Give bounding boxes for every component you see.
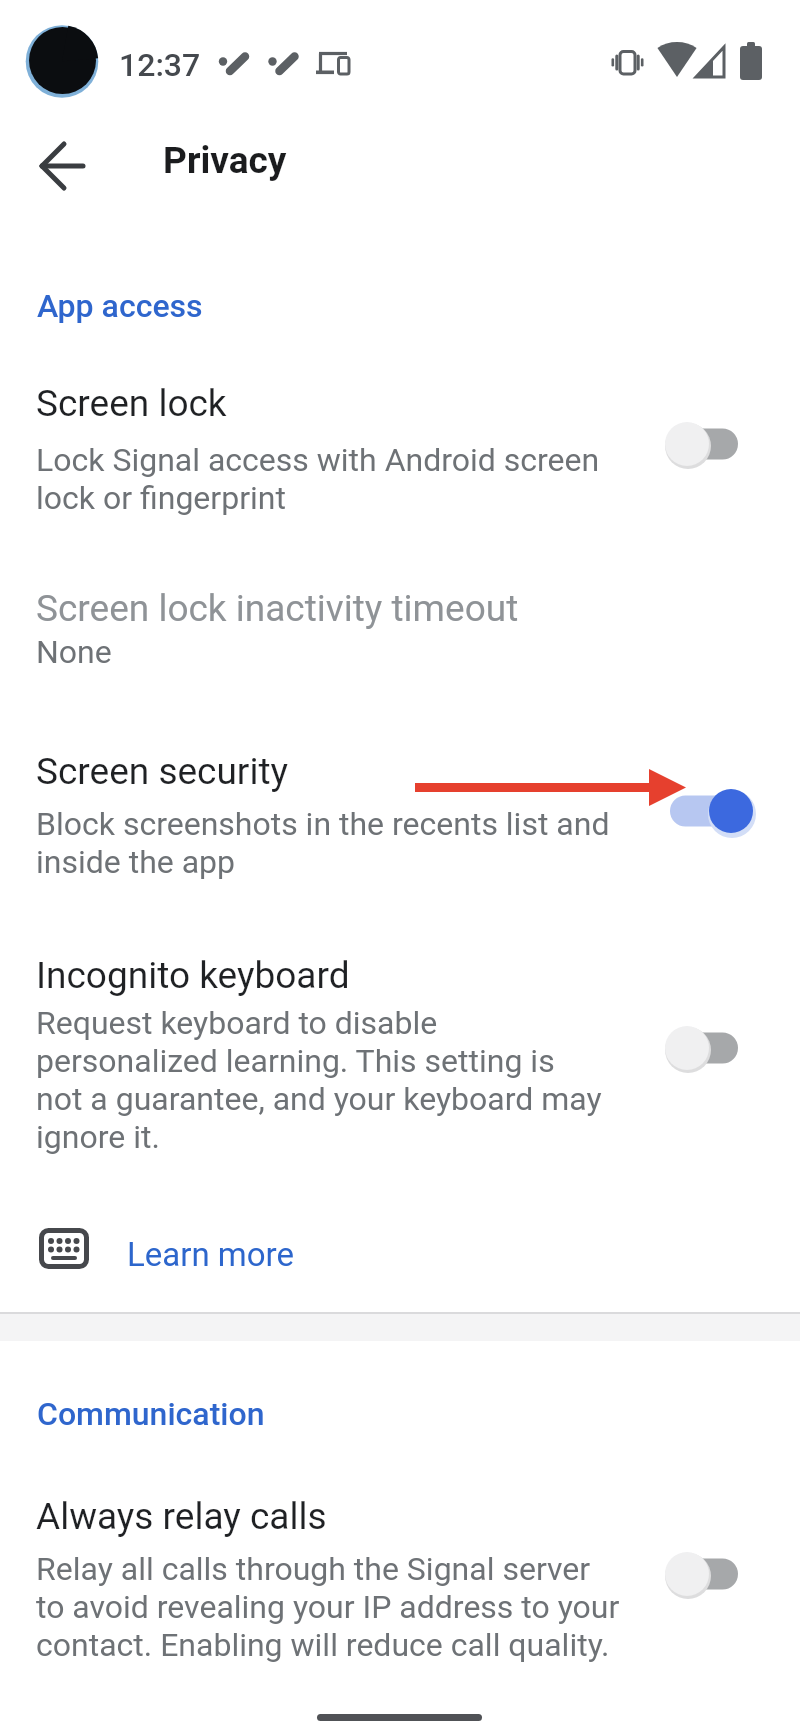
staticText: Privacy [163, 139, 287, 182]
staticText: Learn more [127, 1235, 294, 1274]
staticText: Screen lock inactivity timeout [36, 587, 519, 630]
staticText: App access [37, 287, 203, 325]
button[interactable]: Always relay calls [0, 1478, 800, 1678]
staticText: Incognito keyboard [36, 954, 350, 997]
staticText: Communication [37, 1395, 265, 1433]
staticText: None [36, 633, 112, 671]
button[interactable]: Screen security [0, 733, 800, 893]
button[interactable]: Incognito keyboard [0, 937, 800, 1167]
button[interactable]: Learn more [0, 1215, 800, 1285]
staticText: Screen lock [36, 382, 227, 425]
button[interactable]: Screen lock [0, 365, 800, 525]
button[interactable] [28, 132, 96, 200]
staticText: Relay all calls through the Signal serve… [36, 1550, 620, 1664]
staticText: 12:37 [119, 46, 201, 84]
button[interactable]: Screen lock inactivity timeout [0, 570, 800, 690]
staticText: Always relay calls [36, 1495, 327, 1538]
staticText: Screen security [36, 750, 289, 793]
staticText: Block screenshots in the recents list an… [36, 805, 610, 881]
staticText: Lock Signal access with Android screen l… [36, 441, 600, 517]
staticText: Request keyboard to disable personalized… [36, 1004, 602, 1156]
